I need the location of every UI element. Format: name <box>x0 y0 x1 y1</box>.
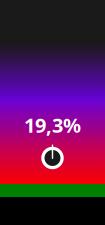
button[interactable]: Power <box>37 144 67 174</box>
staticText: 19,3% <box>24 112 81 138</box>
